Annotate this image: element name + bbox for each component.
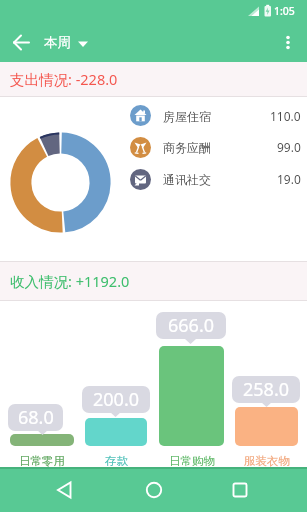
button[interactable]: 本周 [40,28,95,56]
button[interactable] [139,475,169,505]
staticText: 存款 [105,454,128,468]
staticText: 房屋住宿 [163,109,211,124]
staticText: 收入情况: +1192.0 [10,271,130,291]
button[interactable] [124,102,307,130]
button[interactable] [124,133,307,161]
staticText: 支出情况: -228.0 [10,69,118,89]
staticText: 日常购物 [169,454,215,468]
staticText: 68.0 [18,405,54,430]
staticText: 本周 [44,34,71,51]
staticText: 1:05 [274,4,295,18]
button[interactable] [225,475,255,505]
button[interactable] [6,28,36,56]
staticText: 服装衣物 [244,454,290,468]
staticText: 19.0 [277,171,301,187]
staticText: 666.0 [168,313,215,338]
staticText: 258.0 [243,377,290,402]
staticText: 200.0 [93,387,140,412]
staticText: 110.0 [270,108,301,124]
staticText: 商务应酬 [163,140,211,155]
staticText: 99.0 [277,139,301,155]
button[interactable] [276,28,302,56]
staticText: 通讯社交 [163,172,211,187]
button[interactable] [124,165,307,193]
button[interactable] [49,475,79,505]
staticText: 日常零用 [19,454,65,468]
